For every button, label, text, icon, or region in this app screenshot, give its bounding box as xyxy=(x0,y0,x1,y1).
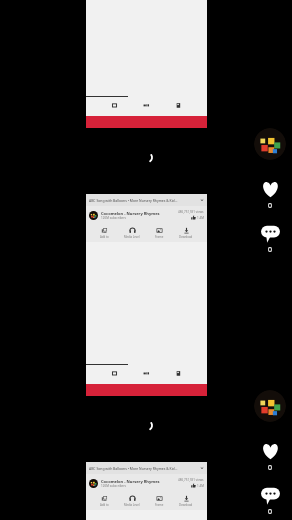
staticText: ABC Song with Balloons • More Nursery Rh… xyxy=(89,466,200,471)
button[interactable]: Back xyxy=(175,102,182,109)
button[interactable]: Frame xyxy=(154,227,165,239)
button[interactable]: ABC Song with Balloons • More Nursery Rh… xyxy=(86,462,207,474)
staticText: 126M subscribers xyxy=(101,484,126,488)
button[interactable]: Download xyxy=(178,495,194,507)
button[interactable]: Download xyxy=(178,227,194,239)
button[interactable]: Home xyxy=(143,370,150,377)
button[interactable]: Media Level xyxy=(123,227,141,239)
button[interactable]: Comment xyxy=(260,485,281,517)
staticText: 0 xyxy=(268,245,273,255)
button[interactable]: Like xyxy=(260,441,281,473)
button[interactable]: Recents xyxy=(111,370,118,377)
staticText: 486,751,591 views xyxy=(178,478,204,482)
staticText: Frame xyxy=(155,235,164,239)
staticText: Add to xyxy=(100,235,109,239)
button[interactable]: Recents xyxy=(111,102,118,109)
staticText: 0 xyxy=(268,463,273,473)
staticText: Add to xyxy=(100,503,109,507)
button[interactable]: Cocomelon - Nursery Rhymes xyxy=(86,206,207,224)
button[interactable]: Channel avatar xyxy=(254,390,286,422)
button[interactable]: Media Level xyxy=(123,495,141,507)
button[interactable]: Like xyxy=(260,179,281,211)
staticText: 1.4M xyxy=(197,216,204,220)
staticText: Cocomelon - Nursery Rhymes xyxy=(101,211,160,216)
staticText: Frame xyxy=(155,503,164,507)
staticText: Download xyxy=(179,503,193,507)
staticText: Download xyxy=(179,235,193,239)
staticText: 126M subscribers xyxy=(101,216,126,220)
button[interactable]: ABC Song with Balloons • More Nursery Rh… xyxy=(86,194,207,206)
button[interactable]: Back xyxy=(175,370,182,377)
staticText: 1.4M xyxy=(197,484,204,488)
staticText: Media Level xyxy=(124,235,140,239)
staticText: ABC Song with Balloons • More Nursery Rh… xyxy=(89,198,200,203)
button[interactable]: Add to xyxy=(99,495,110,507)
button[interactable]: Comment xyxy=(260,223,281,255)
staticText: 486,751,591 views xyxy=(178,210,204,214)
staticText: 0 xyxy=(268,201,273,211)
button[interactable]: Home xyxy=(143,102,150,109)
button[interactable]: Add to xyxy=(99,227,110,239)
staticText: Cocomelon - Nursery Rhymes xyxy=(101,479,160,484)
button[interactable]: Cocomelon - Nursery Rhymes xyxy=(86,474,207,492)
button[interactable]: Frame xyxy=(154,495,165,507)
staticText: 0 xyxy=(268,507,273,517)
staticText: Media Level xyxy=(124,503,140,507)
button[interactable]: Channel avatar xyxy=(254,128,286,160)
